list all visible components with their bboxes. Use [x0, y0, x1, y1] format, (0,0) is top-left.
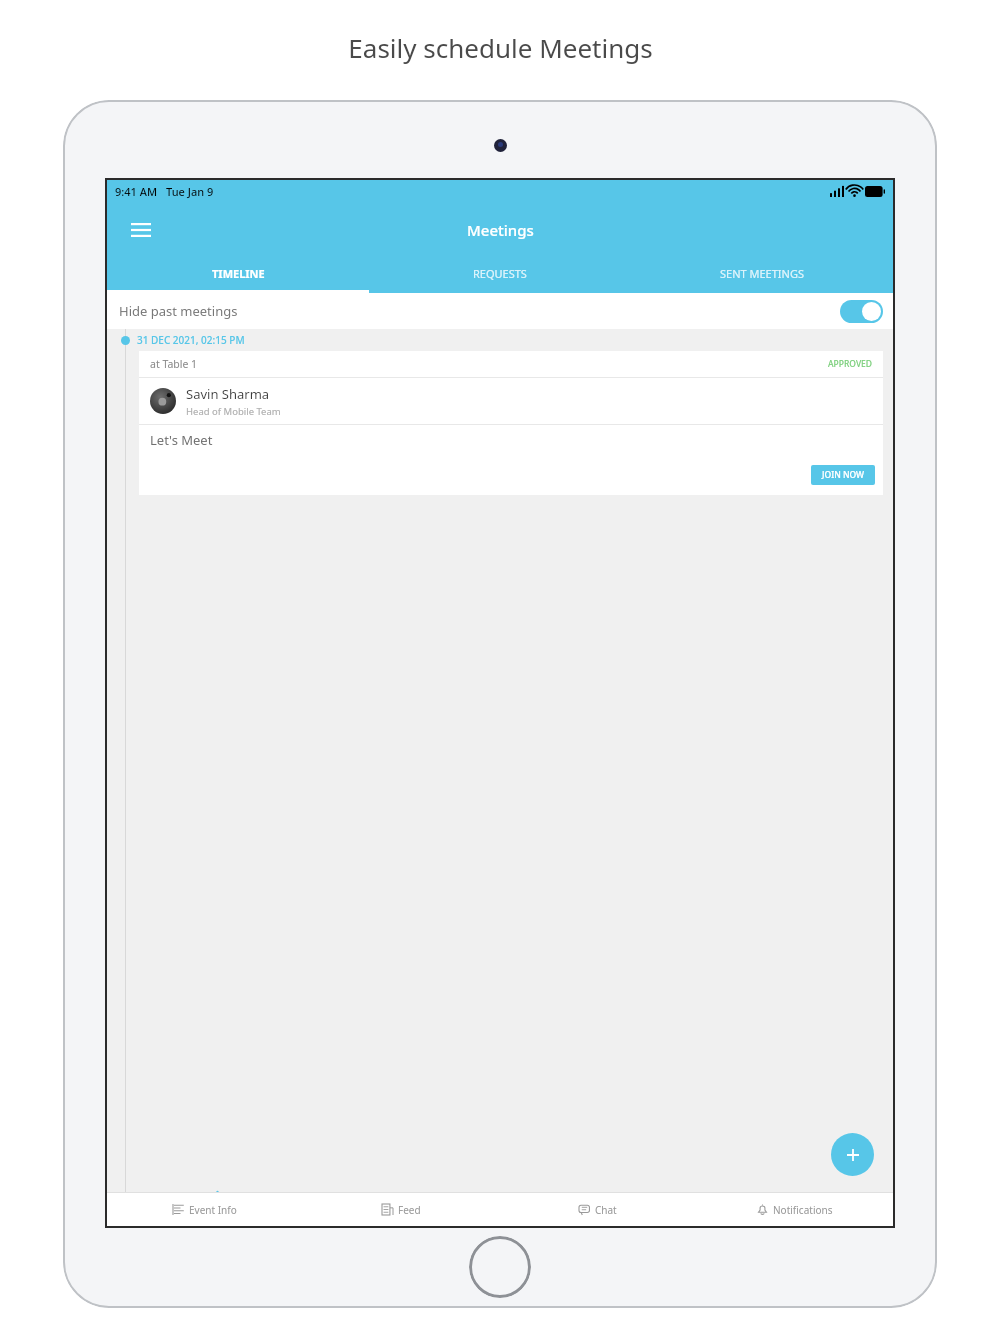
button[interactable]: REQUESTS — [369, 257, 631, 290]
staticText: Feed — [398, 1203, 421, 1217]
staticText: Easily schedule Meetings — [348, 30, 653, 65]
staticText: Notifications — [773, 1203, 833, 1217]
button[interactable]: Feed — [303, 1193, 499, 1226]
staticText: Tue Jan 9 — [166, 184, 214, 199]
staticText: Event Info — [189, 1203, 237, 1217]
button[interactable]: Menu — [119, 208, 163, 252]
button[interactable]: Notifications — [696, 1193, 893, 1226]
staticText: Savin Sharma — [186, 385, 270, 403]
button[interactable]: at Table 1 — [139, 351, 883, 495]
staticText: SENT MEETINGS — [720, 266, 804, 281]
staticText: Hide past meetings — [119, 302, 238, 320]
staticText: 9:41 AM — [115, 184, 158, 199]
button[interactable]: Chat — [499, 1193, 696, 1226]
staticText: Head of Mobile Team — [186, 405, 281, 418]
staticText: Chat — [595, 1203, 617, 1217]
staticText: 31 DEC 2021, 02:15 PM — [137, 333, 245, 347]
button[interactable]: Event Info — [107, 1193, 303, 1226]
staticText: at Table 1 — [150, 357, 198, 371]
staticText: JOIN NOW — [822, 469, 865, 481]
button[interactable]: Add meeting — [831, 1133, 874, 1176]
button[interactable]: JOIN NOW — [811, 465, 875, 485]
staticText: APPROVED — [828, 358, 873, 370]
staticText: TIMELINE — [212, 266, 265, 281]
staticText: REQUESTS — [473, 266, 527, 281]
staticText: Meetings — [467, 220, 534, 240]
button[interactable]: SENT MEETINGS — [631, 257, 893, 290]
staticText: Let's Meet — [150, 431, 213, 449]
button[interactable]: TIMELINE — [107, 257, 369, 290]
button[interactable]: Hide past meetings toggle — [840, 300, 883, 323]
